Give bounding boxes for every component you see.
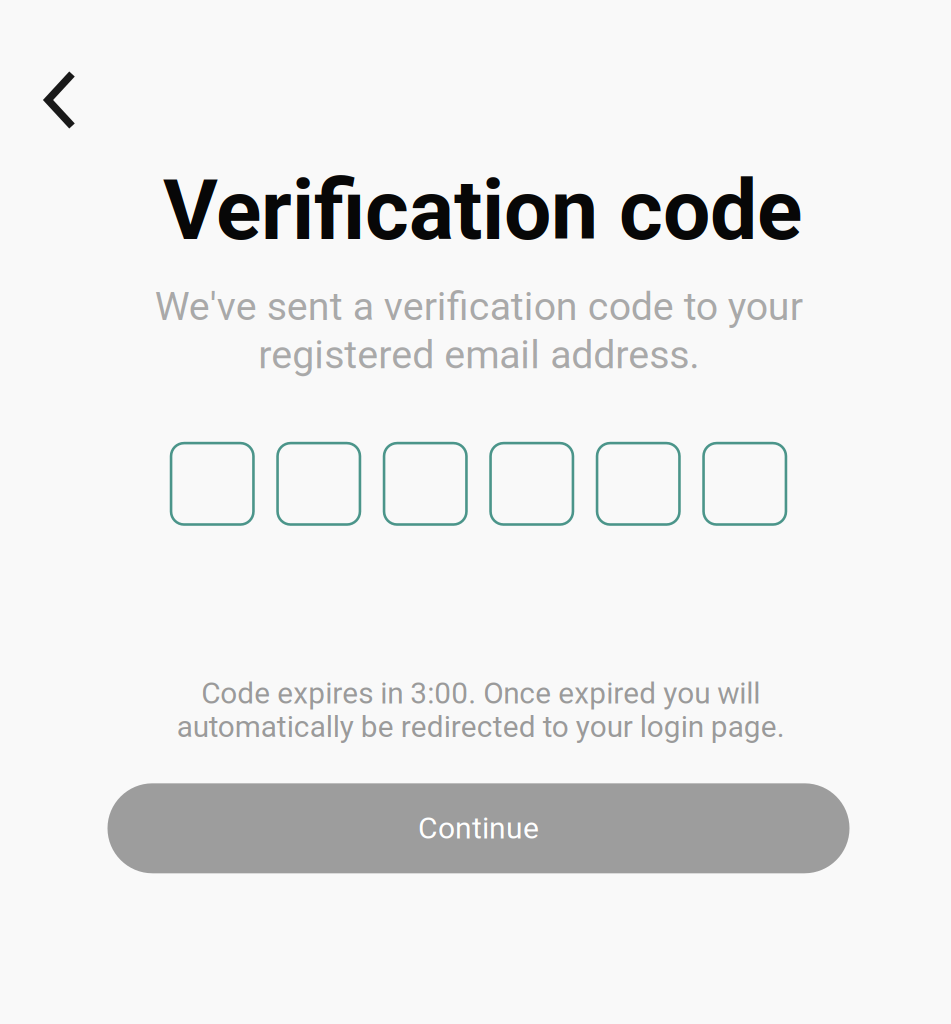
staticText: Verification code: [163, 161, 802, 259]
button[interactable]: Digit 6: [702, 442, 787, 526]
staticText: Continue: [418, 811, 539, 846]
button[interactable]: Digit 3: [383, 442, 468, 526]
button[interactable]: Continue: [107, 783, 849, 873]
button[interactable]: Digit 5: [596, 442, 681, 526]
button[interactable]: Digit 1: [170, 442, 255, 526]
button[interactable]: Digit 2: [276, 442, 361, 526]
staticText: We've sent a verification code to your r…: [154, 283, 802, 378]
button[interactable]: Back: [29, 69, 91, 131]
staticText: Code expires in 3:00. Once expired you w…: [176, 676, 784, 744]
button[interactable]: Digit 4: [489, 442, 574, 526]
